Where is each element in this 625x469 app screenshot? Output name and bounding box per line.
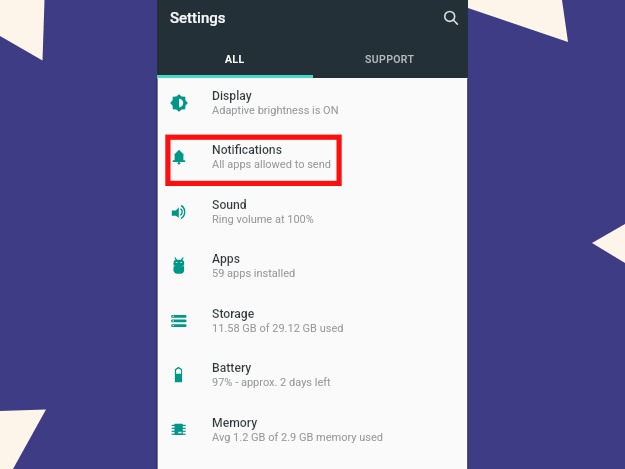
button[interactable]: Memory	[157, 402, 468, 457]
staticText: Settings	[170, 9, 226, 27]
staticText: Storage	[212, 307, 255, 321]
button[interactable]: Storage	[157, 293, 468, 348]
staticText: SUPPORT	[365, 53, 415, 65]
staticText: Adaptive brightness is ON	[212, 104, 339, 117]
staticText: 59 apps installed	[212, 267, 296, 280]
button[interactable]: Battery	[157, 347, 468, 402]
staticText: Sound	[212, 198, 247, 212]
staticText: Battery	[212, 361, 252, 375]
staticText: Apps	[212, 252, 240, 266]
staticText: Display	[212, 89, 252, 103]
staticText: Memory	[212, 416, 258, 430]
button[interactable]: Display	[157, 75, 468, 130]
staticText: 97% - approx. 2 days left	[212, 376, 331, 389]
button[interactable]: Apps	[157, 238, 468, 293]
staticText: All apps allowed to send	[212, 158, 331, 171]
staticText: Notifications	[212, 143, 282, 157]
button[interactable]: Notifications	[157, 129, 468, 184]
button[interactable]: Sound	[157, 184, 468, 239]
button[interactable]: ALL	[157, 40, 312, 78]
staticText: Ring volume at 100%	[212, 213, 314, 226]
staticText: 11.58 GB of 29.12 GB used	[212, 322, 344, 335]
button[interactable]: Search	[435, 2, 467, 34]
staticText: ALL	[225, 53, 245, 65]
button[interactable]: SUPPORT	[312, 40, 468, 78]
staticText: Avg 1.2 GB of 2.9 GB memory used	[212, 431, 383, 444]
